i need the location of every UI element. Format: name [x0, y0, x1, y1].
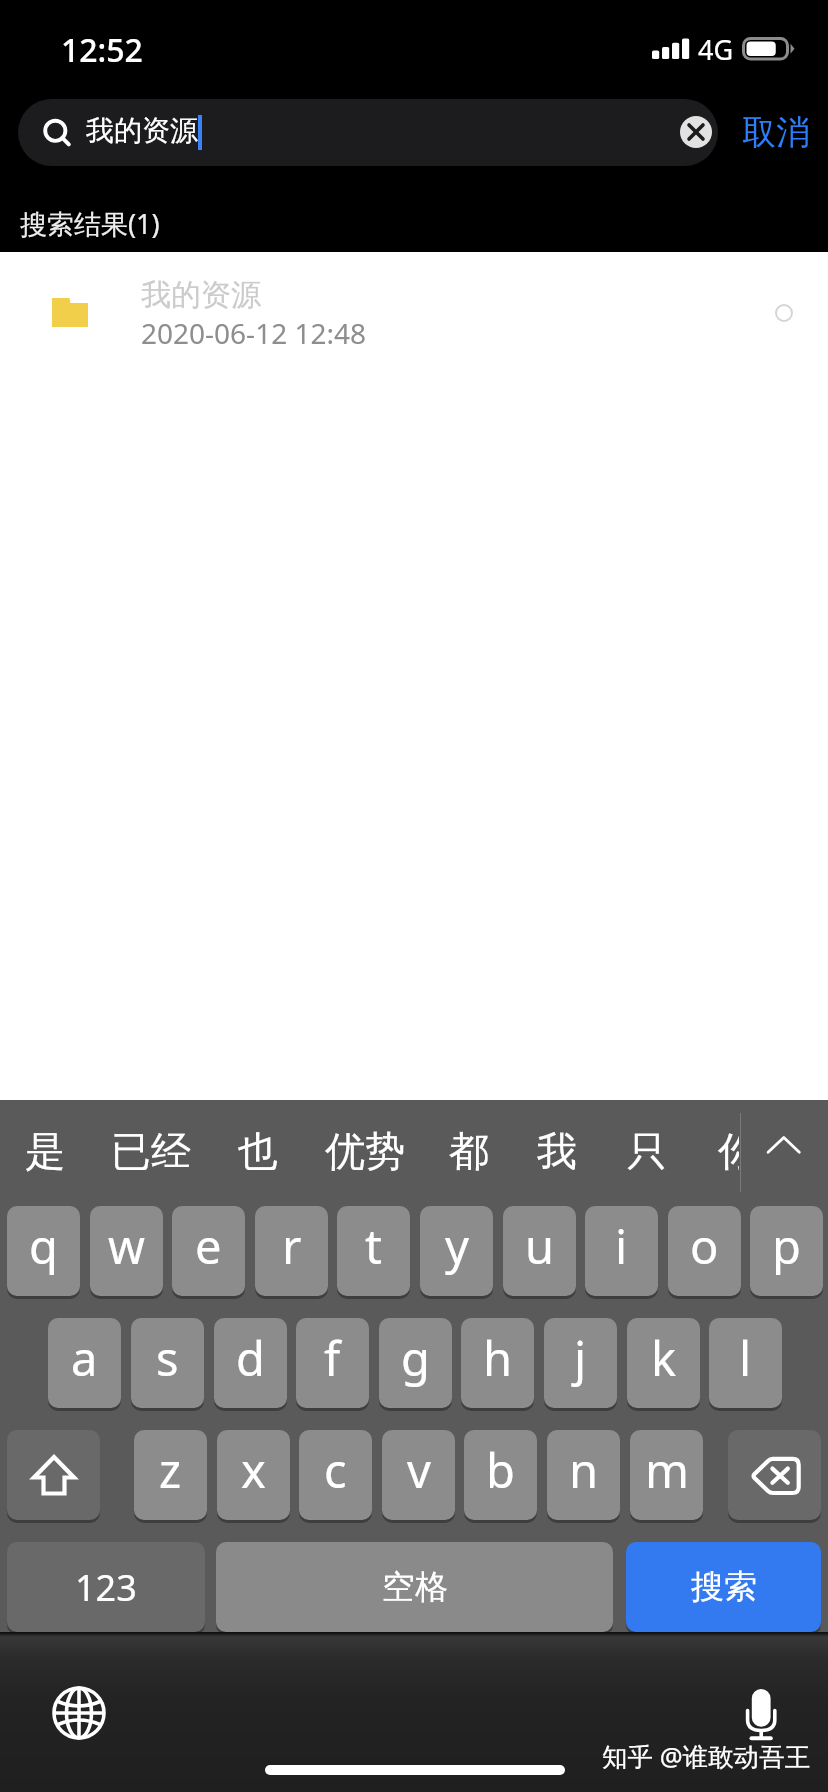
button[interactable]: k [627, 1318, 700, 1408]
staticText: j [574, 1326, 587, 1390]
staticText: 空格 [382, 1566, 448, 1608]
staticText: o [690, 1214, 719, 1278]
staticText: 我的资源 [141, 276, 261, 314]
button[interactable]: 搜索 [626, 1542, 821, 1632]
staticText: z [159, 1438, 182, 1502]
button[interactable]: 已经 [111, 1126, 191, 1176]
button[interactable]: 我的资源 [0, 252, 828, 362]
button[interactable]: m [630, 1430, 703, 1520]
button[interactable]: Change keyboard [41, 1675, 117, 1751]
button[interactable]: a [48, 1318, 121, 1408]
button[interactable]: i [585, 1206, 658, 1296]
staticText: 取消 [742, 111, 810, 154]
staticText: m [645, 1438, 689, 1502]
staticText: h [483, 1326, 513, 1390]
staticText: 你 [718, 1126, 739, 1176]
button[interactable]: s [131, 1318, 204, 1408]
staticText: 已经 [111, 1126, 191, 1176]
button[interactable]: o [668, 1206, 741, 1296]
button[interactable]: p [750, 1206, 823, 1296]
button[interactable]: Backspace [728, 1430, 821, 1520]
button[interactable]: j [544, 1318, 617, 1408]
staticText: 12:52 [61, 28, 143, 72]
button[interactable]: h [461, 1318, 534, 1408]
staticText: w [108, 1214, 145, 1278]
staticText: r [282, 1214, 302, 1278]
button[interactable]: q [7, 1206, 80, 1296]
button[interactable]: l [709, 1318, 782, 1408]
staticText: e [195, 1214, 222, 1278]
button[interactable]: 我的资源 [18, 99, 718, 166]
staticText: i [615, 1214, 628, 1278]
button[interactable]: w [90, 1206, 163, 1296]
button[interactable]: x [217, 1430, 290, 1520]
button[interactable]: f [296, 1318, 369, 1408]
button[interactable]: 空格 [216, 1542, 613, 1632]
staticText: y [445, 1214, 469, 1278]
button[interactable]: n [547, 1430, 620, 1520]
staticText: u [525, 1214, 555, 1278]
button[interactable]: t [337, 1206, 410, 1296]
staticText: 2020-06-12 12:48 [141, 314, 367, 352]
staticText: g [401, 1326, 430, 1390]
staticText: 我的资源 [86, 113, 198, 148]
staticText: 搜索结果(1) [20, 205, 160, 242]
staticText: c [324, 1438, 347, 1502]
staticText: 123 [75, 1563, 137, 1612]
button[interactable]: 只 [627, 1126, 667, 1176]
staticText: t [365, 1214, 382, 1278]
staticText: 是 [25, 1126, 65, 1176]
staticText: a [71, 1326, 98, 1390]
button[interactable]: 我 [537, 1126, 577, 1176]
staticText: 都 [449, 1126, 489, 1176]
staticText: 4G [698, 31, 734, 68]
staticText: q [29, 1214, 58, 1278]
staticText: 只 [627, 1126, 667, 1176]
button[interactable]: 是 [25, 1126, 65, 1176]
staticText: d [236, 1326, 265, 1390]
button[interactable]: z [134, 1430, 207, 1520]
button[interactable]: Clear [680, 116, 712, 148]
button[interactable]: r [255, 1206, 328, 1296]
staticText: v [407, 1438, 431, 1502]
button[interactable]: c [299, 1430, 372, 1520]
button[interactable]: 取消 [734, 99, 818, 166]
button[interactable]: 你 [718, 1126, 739, 1176]
button[interactable]: g [379, 1318, 452, 1408]
button[interactable]: 123 [7, 1542, 205, 1632]
staticText: p [772, 1214, 801, 1278]
staticText: b [486, 1438, 515, 1502]
button[interactable]: 也 [238, 1126, 278, 1176]
other: Select [768, 297, 800, 329]
staticText: x [241, 1438, 266, 1502]
button[interactable]: Dictation [726, 1682, 796, 1752]
staticText: 也 [238, 1126, 278, 1176]
staticText: 优势 [325, 1126, 405, 1176]
button[interactable]: 优势 [325, 1126, 405, 1176]
staticText: l [739, 1326, 752, 1390]
button[interactable]: Expand candidates [748, 1114, 826, 1192]
button[interactable]: v [382, 1430, 455, 1520]
staticText: k [651, 1326, 677, 1390]
staticText: 搜索 [691, 1566, 757, 1608]
button[interactable]: b [464, 1430, 537, 1520]
staticText: f [324, 1326, 341, 1390]
button[interactable]: Shift [7, 1430, 100, 1520]
button[interactable]: 都 [449, 1126, 489, 1176]
staticText: 知乎 @谁敢动吾王 [602, 1739, 811, 1774]
staticText: 我 [537, 1126, 577, 1176]
button[interactable]: y [420, 1206, 493, 1296]
button[interactable]: d [214, 1318, 287, 1408]
staticText: n [569, 1438, 599, 1502]
staticText: s [156, 1326, 179, 1390]
button[interactable]: e [172, 1206, 245, 1296]
button[interactable]: u [503, 1206, 576, 1296]
